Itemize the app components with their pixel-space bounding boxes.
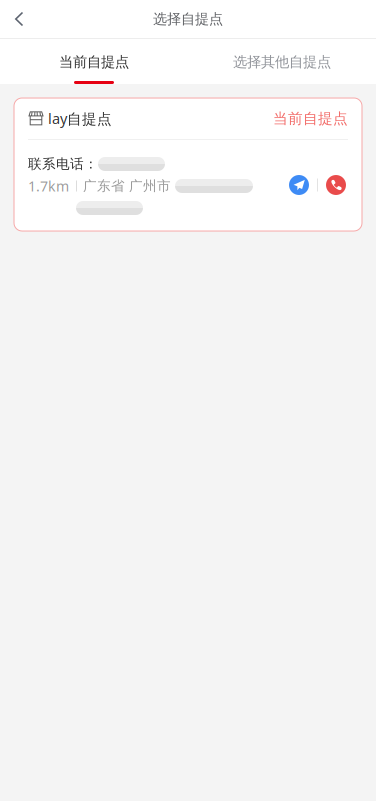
staticText: 1.7km	[28, 176, 69, 196]
button[interactable]: Back	[0, 0, 38, 38]
button[interactable]: 选择其他自提点	[188, 39, 376, 84]
button[interactable]: Directions	[289, 175, 309, 195]
staticText: 选择自提点	[153, 10, 223, 28]
staticText: 当前自提点	[59, 53, 129, 71]
button[interactable]: Call	[326, 175, 346, 195]
staticText: lay自提点	[48, 109, 112, 128]
staticText: 广东省 广州市	[83, 177, 171, 194]
staticText: 当前自提点	[273, 109, 348, 128]
button[interactable]: 当前自提点	[0, 39, 188, 84]
staticText: 选择其他自提点	[233, 53, 331, 71]
staticText: 联系电话：	[28, 155, 98, 172]
